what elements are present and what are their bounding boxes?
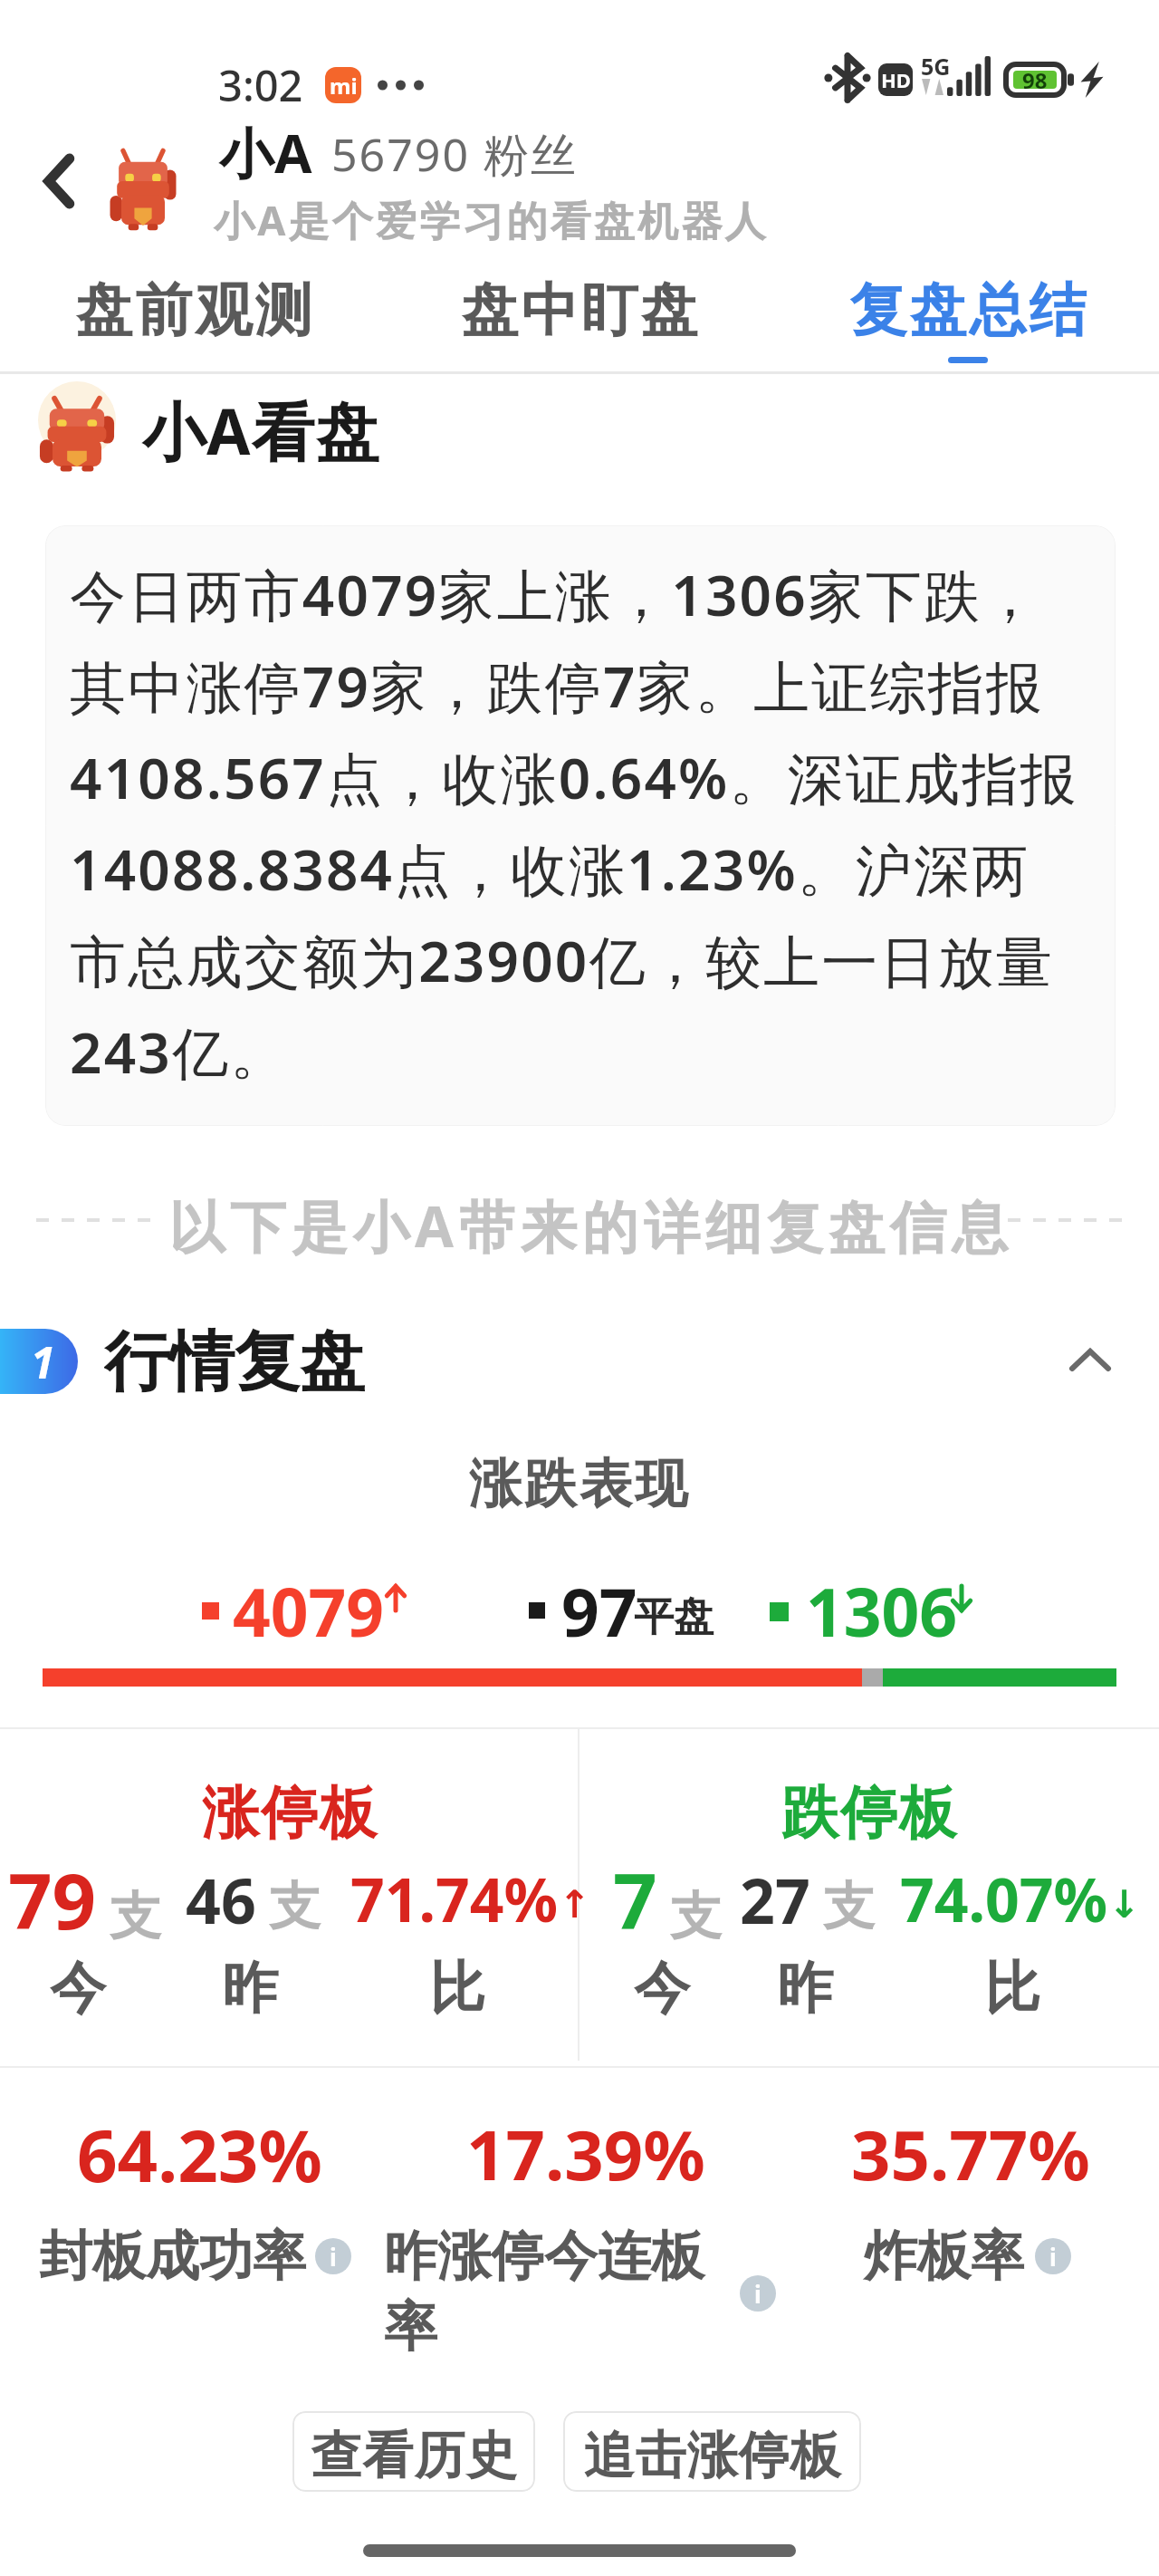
staticText: 比 [429, 1953, 485, 2023]
staticText: 56790 粉丝 [331, 123, 578, 185]
button[interactable]: 小A profile [91, 118, 779, 240]
staticText: 46 [186, 1858, 256, 1942]
staticText: i [1049, 2241, 1057, 2273]
staticText: 炸板率 [864, 2223, 1024, 2290]
staticText: 查看历史 [311, 2424, 517, 2488]
staticText: 64.23% [77, 2107, 322, 2203]
staticText: 支 [670, 1884, 722, 1949]
staticText: 比 [984, 1953, 1040, 2023]
staticText: 盘前观测 [74, 274, 313, 346]
staticText: i [754, 2278, 761, 2310]
staticText: 3:02 [218, 56, 303, 114]
staticText: 支 [269, 1874, 321, 1939]
staticText: 71.74% [350, 1858, 559, 1939]
staticText: 昨涨停今连板率 [384, 2223, 719, 2361]
button[interactable]: 追击涨停板 [563, 2411, 861, 2492]
staticText: 7 [613, 1847, 657, 1952]
button[interactable]: 1 [0, 1325, 1159, 1398]
staticText: i [330, 2241, 337, 2273]
staticText: 以下是小A带来的详细复盘信息 [168, 1187, 1013, 1256]
staticText: 今 [634, 1953, 690, 2023]
button[interactable]: Info [315, 2238, 351, 2274]
staticText: HD [881, 66, 911, 93]
button[interactable]: 复盘总结 [805, 274, 1131, 376]
staticText: 4079 [233, 1566, 385, 1653]
staticText: 27 [740, 1858, 810, 1942]
staticText: 盘中盯盘 [460, 274, 699, 346]
staticText: 小A看盘 [142, 387, 380, 474]
staticText: 79 [8, 1847, 97, 1952]
staticText: 支 [110, 1884, 161, 1949]
button[interactable]: 盘前观测 [31, 274, 357, 376]
staticText: 追击涨停板 [583, 2424, 841, 2488]
staticText: ↑ [559, 1882, 591, 1927]
staticText: 1 [31, 1332, 55, 1391]
staticText: 今 [50, 1953, 106, 2023]
staticText: 1306 [806, 1566, 958, 1653]
staticText: 小A [219, 115, 313, 189]
staticText: 复盘总结 [848, 274, 1087, 346]
staticText: 昨 [777, 1953, 833, 2023]
button[interactable]: 查看历史 [292, 2411, 535, 2492]
staticText: 跌停板 [781, 1777, 957, 1849]
staticText: 17.39% [466, 2107, 705, 2201]
button[interactable]: Collapse [1037, 1325, 1136, 1394]
staticText: ↓ [1108, 1882, 1141, 1927]
button[interactable]: Info [740, 2275, 776, 2312]
staticText: 35.77% [851, 2107, 1090, 2201]
staticText: 98 [1022, 65, 1048, 95]
staticText: mi [330, 71, 358, 101]
staticText: 昨 [222, 1953, 278, 2023]
staticText: 平盘 [634, 1592, 714, 1642]
button[interactable]: Info [1035, 2238, 1071, 2274]
staticText: 小A是个爱学习的看盘机器人 [214, 192, 769, 247]
staticText: 涨停板 [201, 1777, 378, 1849]
staticText: 行情复盘 [104, 1322, 365, 1394]
staticText: 74.07% [900, 1858, 1108, 1939]
staticText: 5G [921, 51, 951, 82]
staticText: 今日两市4079家上涨，1306家下跌， 其中涨停79家，跌停7家。上证综指报 … [70, 556, 1078, 1091]
staticText: 97 [561, 1566, 637, 1653]
button[interactable]: Back [18, 136, 100, 226]
staticText: 支 [823, 1874, 875, 1939]
button[interactable]: 盘中盯盘 [417, 274, 742, 376]
staticText: 涨跌表现 [0, 1451, 1159, 1517]
staticText: 封板成功率 [39, 2223, 306, 2290]
